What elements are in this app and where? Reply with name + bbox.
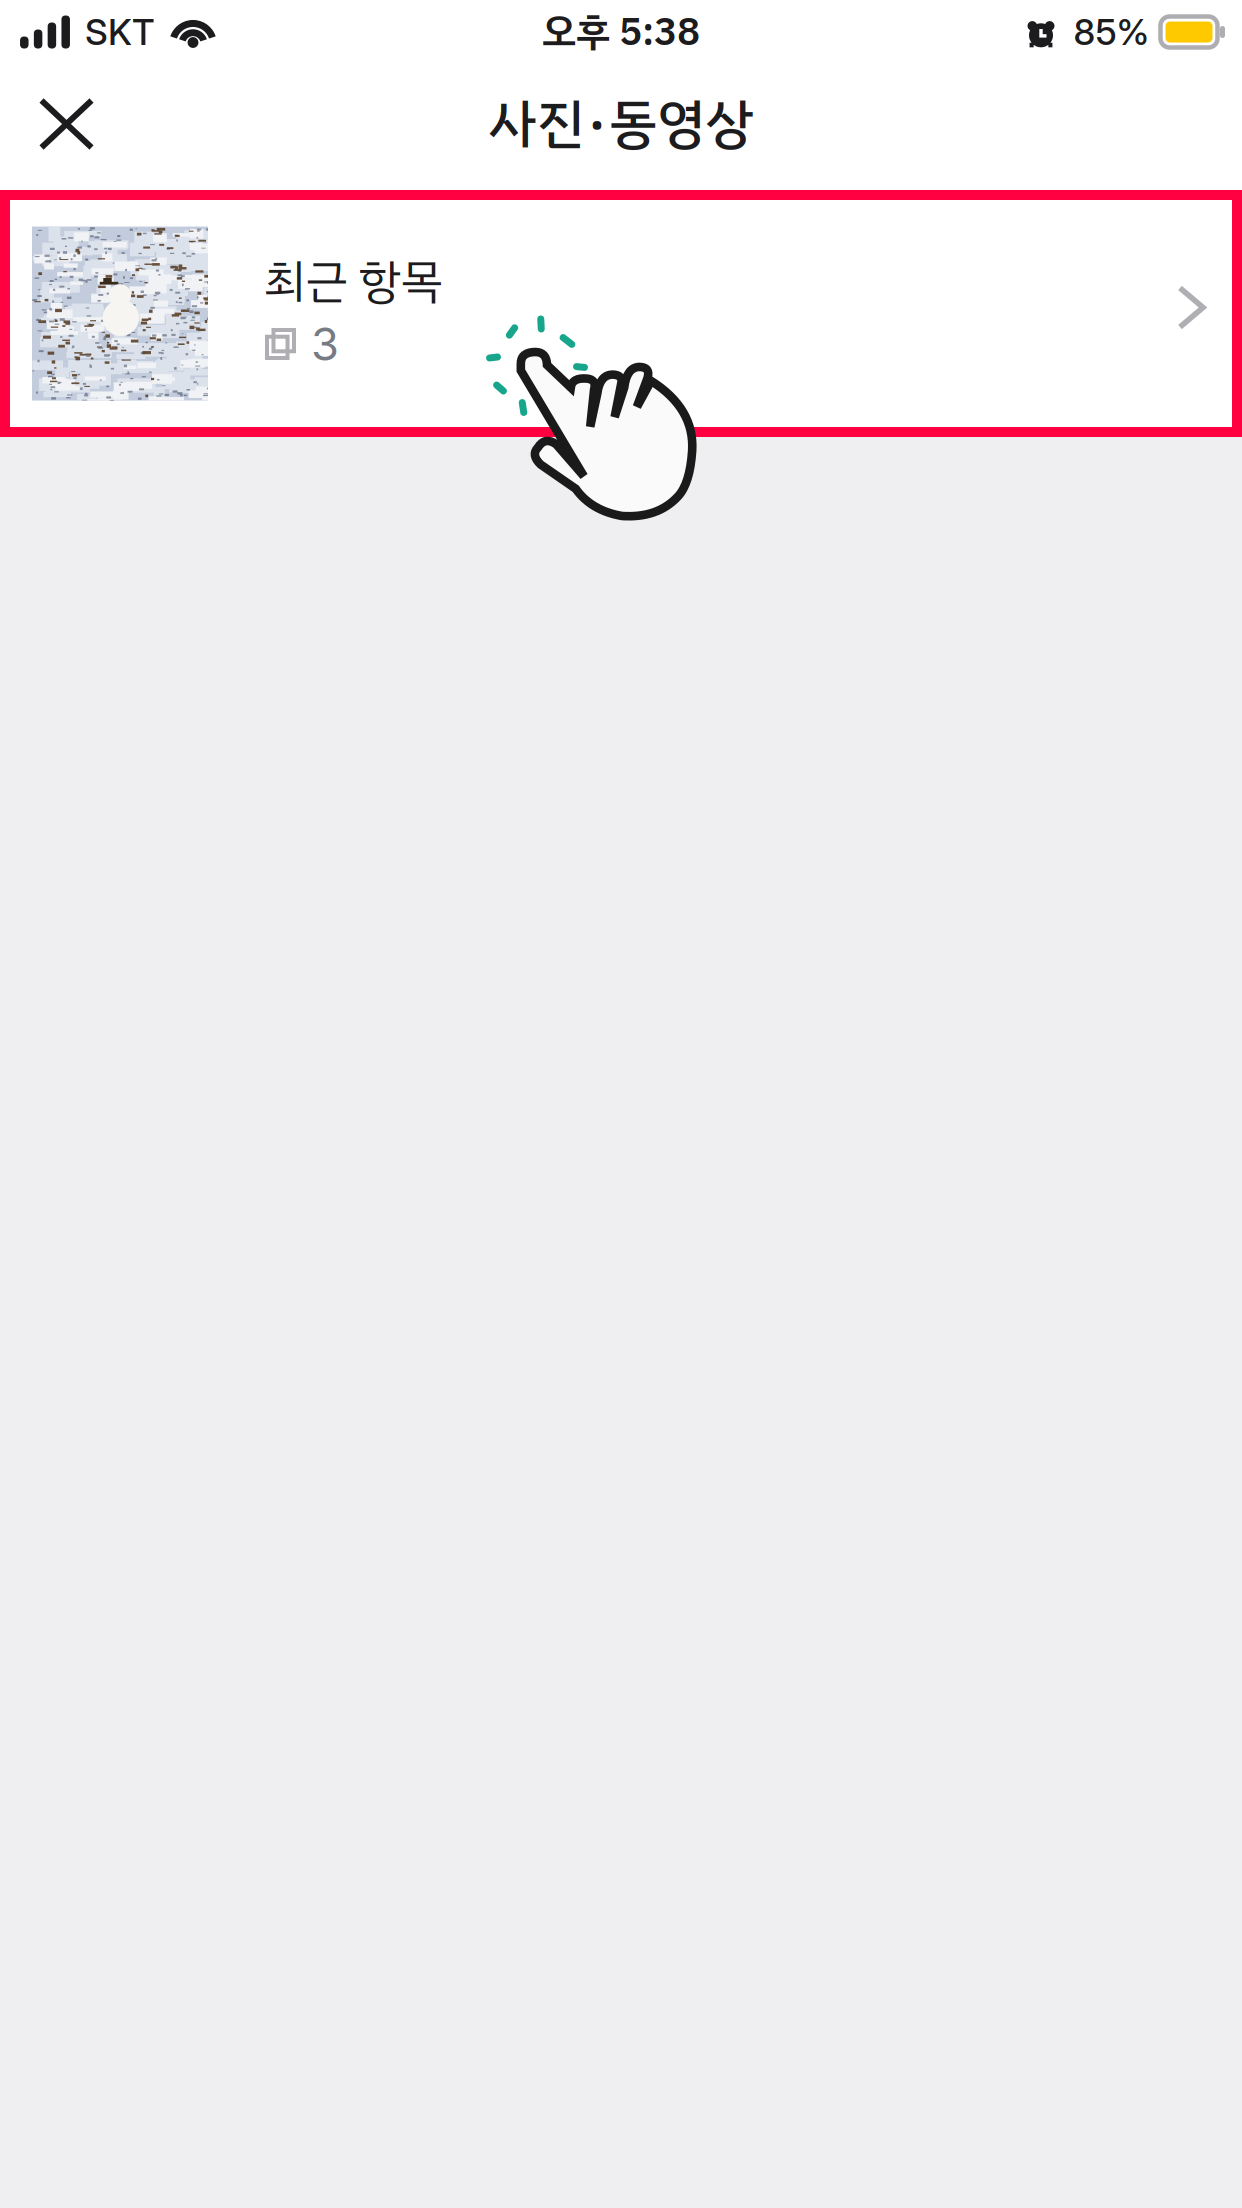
staticText: 최근 항목 [264, 247, 443, 317]
button[interactable]: 최근 항목 [10, 200, 1232, 427]
staticText: 3 [311, 317, 339, 371]
staticText: SKT [85, 10, 155, 54]
staticText: 오후 5:38 [542, 3, 700, 61]
button[interactable]: 닫기 [0, 64, 133, 190]
staticText: 85% [1073, 10, 1149, 54]
staticText: 사진 · 동영상 [488, 84, 753, 164]
